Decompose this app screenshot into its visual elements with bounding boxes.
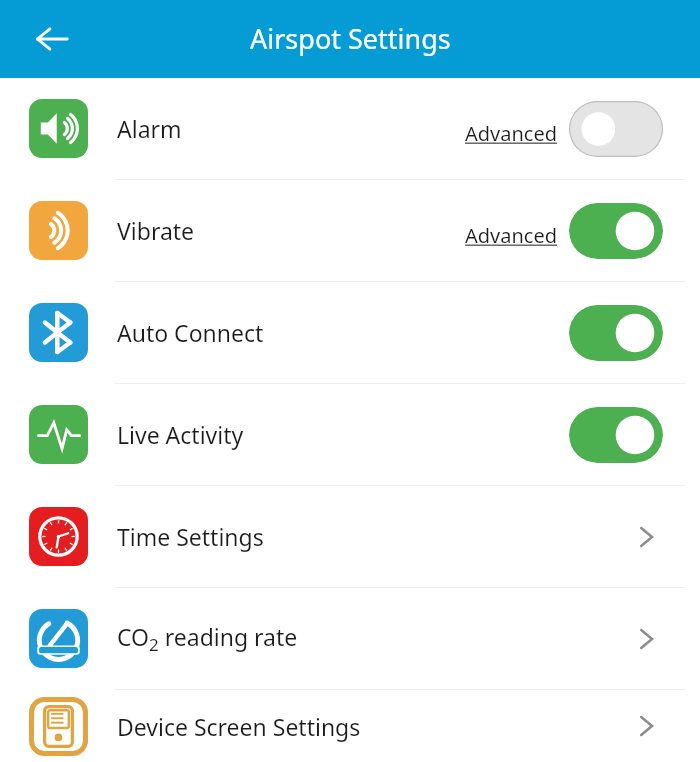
button[interactable]: Alarm bbox=[0, 78, 700, 179]
button[interactable]: Live Activity bbox=[0, 384, 700, 485]
button[interactable]: Back bbox=[22, 9, 82, 69]
staticText: Live Activity bbox=[117, 419, 244, 450]
staticText: Vibrate bbox=[117, 215, 195, 246]
button[interactable]: Open bbox=[622, 513, 670, 561]
button[interactable]: CO2 reading rate bbox=[0, 588, 700, 689]
staticText: Device Screen Settings bbox=[117, 711, 361, 742]
staticText: Advanced bbox=[465, 222, 557, 249]
button[interactable]: Device Screen Settings bbox=[0, 690, 700, 762]
button[interactable]: Open bbox=[622, 615, 670, 663]
button[interactable]: Open bbox=[622, 702, 670, 750]
staticText: Advanced bbox=[465, 120, 557, 147]
button[interactable]: Advanced bbox=[465, 222, 557, 249]
staticText: Alarm bbox=[117, 113, 182, 144]
staticText: Time Settings bbox=[117, 521, 264, 552]
button[interactable]: Auto Connect bbox=[0, 282, 700, 383]
button[interactable]: Toggle on bbox=[569, 203, 663, 259]
staticText: CO2 reading rate bbox=[117, 621, 298, 656]
staticText: Airspot Settings bbox=[250, 20, 451, 57]
staticText: Auto Connect bbox=[117, 317, 264, 348]
button[interactable]: Toggle on bbox=[569, 407, 663, 463]
button[interactable]: Toggle on bbox=[569, 305, 663, 361]
button[interactable]: Time Settings bbox=[0, 486, 700, 587]
button[interactable]: Toggle off bbox=[569, 101, 663, 157]
button[interactable]: Vibrate bbox=[0, 180, 700, 281]
button[interactable]: Advanced bbox=[465, 120, 557, 147]
